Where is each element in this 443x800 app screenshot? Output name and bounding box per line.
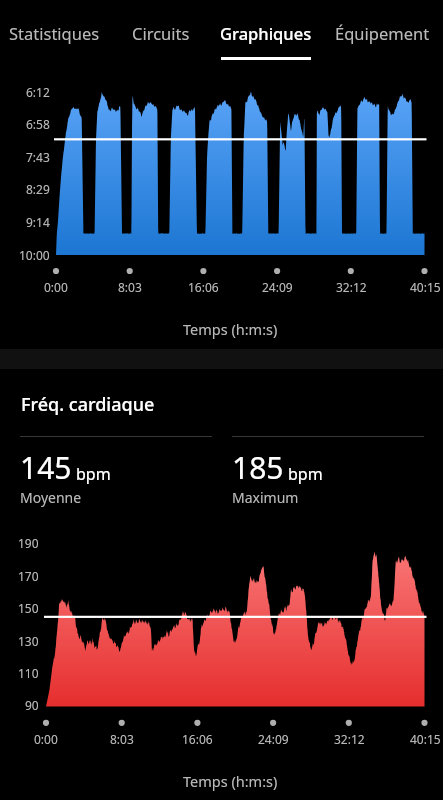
staticText: 8:03 [110, 731, 134, 747]
staticText: Fréq. cardiaque [21, 392, 155, 417]
staticText: 130 [18, 633, 39, 649]
staticText: 24:09 [262, 279, 293, 295]
staticText: 8:29 [26, 181, 50, 197]
button[interactable]: 145 [20, 437, 212, 507]
staticText: 7:43 [26, 149, 50, 165]
staticText: 9:14 [26, 214, 50, 230]
button[interactable]: Équipement [321, 0, 443, 64]
staticText: 190 [18, 535, 39, 551]
staticText: 0:00 [44, 279, 68, 295]
staticText: Graphiques [220, 22, 312, 44]
staticText: 24:09 [258, 731, 289, 747]
button[interactable]: 185 [232, 437, 424, 507]
staticText: 170 [18, 568, 39, 584]
staticText: 32:12 [336, 279, 367, 295]
staticText: bpm [76, 463, 111, 485]
staticText: Circuits [132, 22, 190, 44]
staticText: 145 [20, 447, 72, 488]
staticText: 0:00 [34, 731, 58, 747]
staticText: Maximum [232, 488, 299, 507]
staticText: Temps (h:m:s) [183, 771, 278, 791]
staticText: 185 [232, 447, 284, 488]
staticText: 32:12 [334, 731, 365, 747]
button[interactable]: Circuits [117, 0, 205, 64]
staticText: 110 [18, 665, 39, 681]
staticText: Équipement [335, 22, 430, 44]
staticText: 40:15 [410, 731, 441, 747]
staticText: 150 [18, 600, 39, 616]
staticText: Temps (h:m:s) [183, 319, 278, 339]
staticText: Moyenne [20, 488, 82, 507]
staticText: 16:06 [182, 731, 213, 747]
staticText: 90 [25, 697, 39, 713]
staticText: 16:06 [188, 279, 219, 295]
button[interactable]: Graphiques [206, 0, 326, 64]
staticText: 10:00 [19, 247, 50, 263]
staticText: 6:58 [26, 116, 50, 132]
staticText: 40:15 [410, 279, 441, 295]
staticText: Statistiques [9, 22, 100, 44]
staticText: 8:03 [118, 279, 142, 295]
staticText: bpm [288, 463, 323, 485]
staticText: 6:12 [26, 84, 50, 100]
button[interactable]: Statistiques [0, 0, 112, 64]
